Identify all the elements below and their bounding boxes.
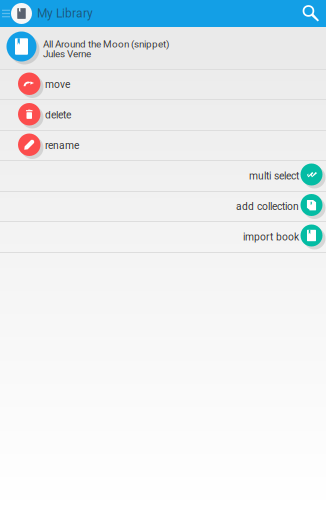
button[interactable]: Library xyxy=(11,3,32,24)
button[interactable]: multi select xyxy=(0,161,326,191)
button[interactable]: move xyxy=(0,70,326,99)
staticText: add collection xyxy=(236,200,299,212)
button[interactable]: delete xyxy=(0,100,326,130)
staticText: Jules Verne xyxy=(43,48,91,60)
staticText: All Around the Moon (snippet) xyxy=(43,38,169,50)
button[interactable]: rename xyxy=(0,131,326,160)
staticText: move xyxy=(45,78,70,90)
button[interactable]: add collection xyxy=(0,192,326,221)
button[interactable]: import book xyxy=(0,222,326,252)
button[interactable]: Search xyxy=(298,0,324,27)
button[interactable]: Menu xyxy=(1,0,11,27)
staticText: multi select xyxy=(249,170,299,182)
staticText: import book xyxy=(243,231,299,243)
staticText: rename xyxy=(45,139,79,151)
staticText: My Library xyxy=(37,6,93,21)
staticText: delete xyxy=(45,109,71,121)
button[interactable]: All Around the Moon (snippet) xyxy=(0,27,326,69)
